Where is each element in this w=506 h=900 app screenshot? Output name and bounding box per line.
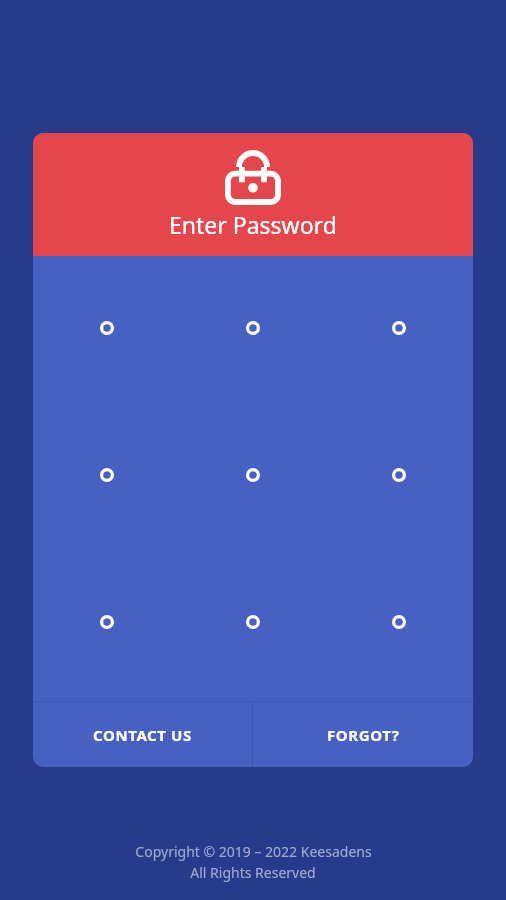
button[interactable] (92, 313, 122, 343)
other: Lock (225, 149, 281, 205)
staticText: All Rights Reserved (190, 863, 316, 882)
button[interactable]: FORGOT? (253, 702, 473, 767)
button[interactable] (238, 313, 268, 343)
staticText: Copyright © 2019 – 2022 Keesadens (135, 842, 372, 861)
staticText: CONTACT US (93, 725, 192, 745)
button[interactable] (238, 460, 268, 490)
staticText: Enter Password (169, 209, 337, 240)
button[interactable] (384, 313, 414, 343)
button[interactable] (384, 460, 414, 490)
button[interactable] (92, 460, 122, 490)
button[interactable]: CONTACT US (33, 702, 252, 767)
staticText: FORGOT? (327, 725, 400, 745)
button[interactable] (384, 607, 414, 637)
button[interactable] (238, 607, 268, 637)
button[interactable] (92, 607, 122, 637)
